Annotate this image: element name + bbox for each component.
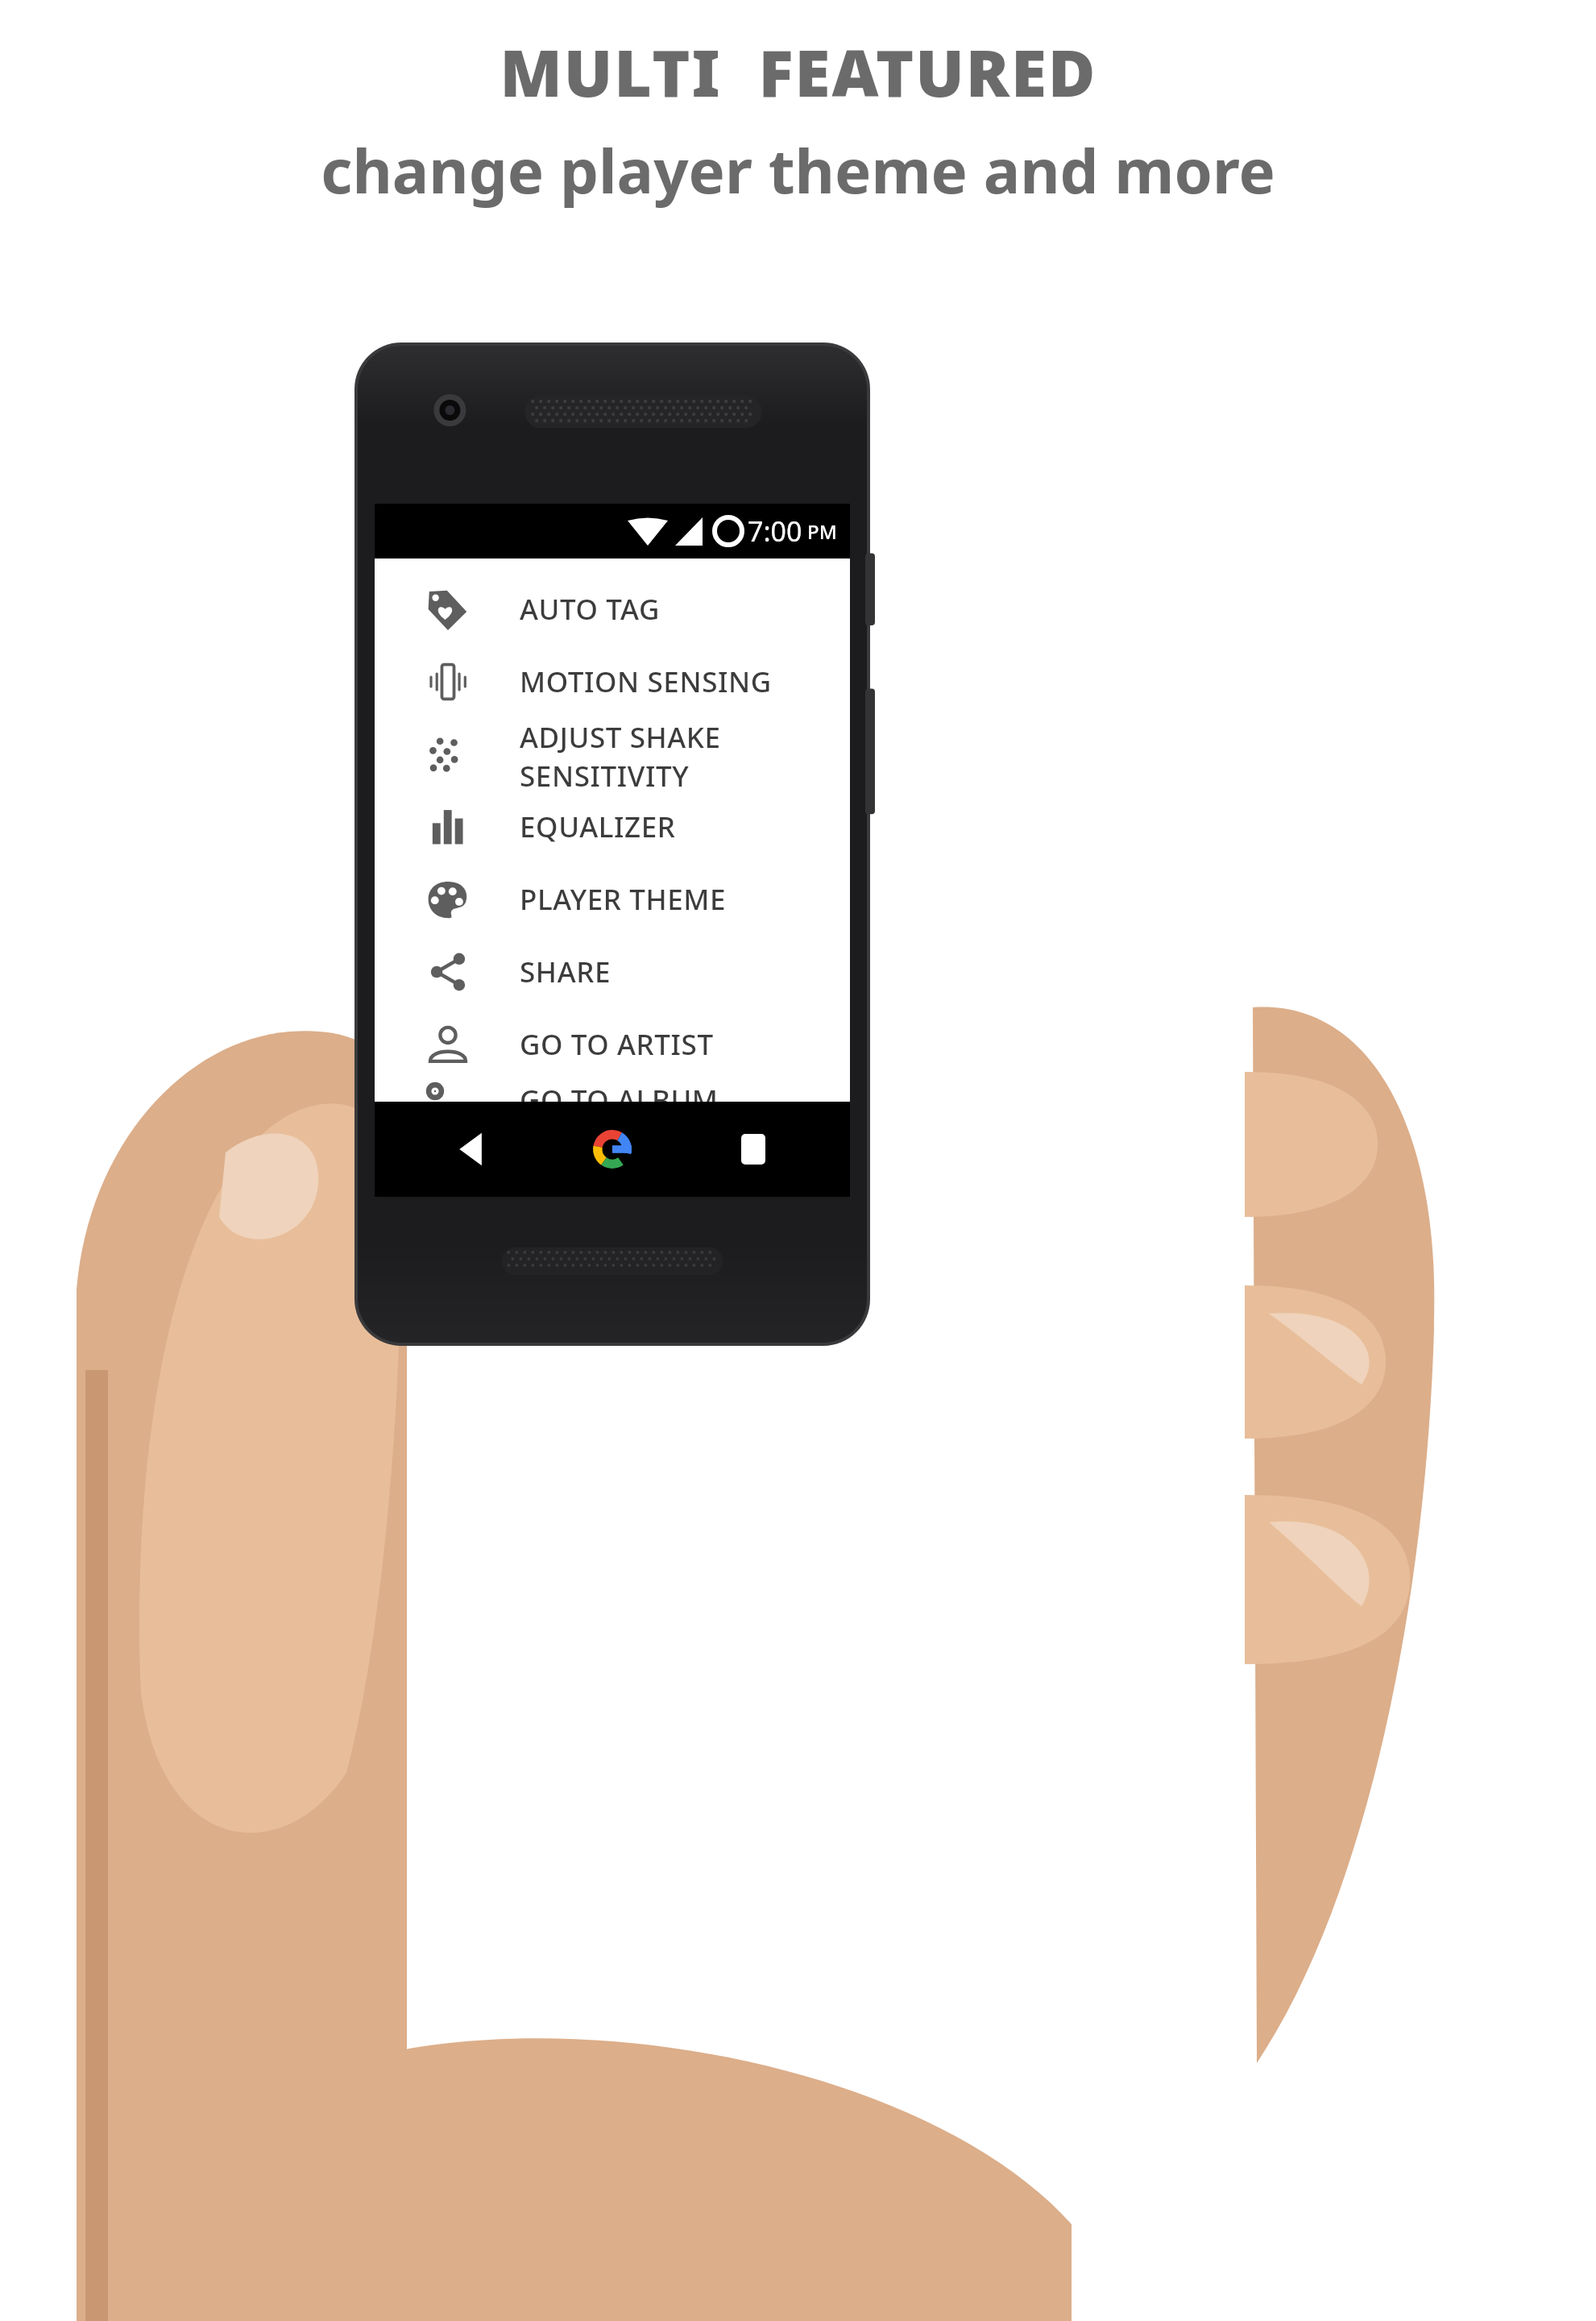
button[interactable]: MOTION SENSING — [375, 646, 850, 718]
button[interactable]: GO TO ARTIST — [375, 1008, 850, 1081]
staticText: 7:00 — [748, 513, 802, 550]
staticText: EQUALIZER — [520, 808, 676, 846]
staticText: MOTION SENSING — [520, 662, 772, 701]
button[interactable]: Back — [427, 1105, 516, 1194]
staticText: SHARE — [520, 953, 611, 991]
staticText: MULTI FEATURED — [500, 27, 1097, 115]
button[interactable]: SHARE — [375, 936, 850, 1008]
button[interactable]: GO TO ALBUM — [375, 1081, 850, 1102]
staticText: GO TO ARTIST — [520, 1025, 714, 1064]
button[interactable]: AUTO TAG — [375, 573, 850, 646]
staticText: GO TO ALBUM — [520, 1081, 719, 1102]
staticText: PM — [807, 518, 837, 545]
button[interactable]: PLAYER THEME — [375, 863, 850, 936]
staticText: change player theme and more — [321, 128, 1275, 212]
button[interactable]: EQUALIZER — [375, 791, 850, 863]
button[interactable]: Home — [568, 1105, 657, 1194]
button[interactable]: ADJUST SHAKE SENSITIVITY — [375, 718, 850, 791]
staticText: PLAYER THEME — [520, 880, 727, 919]
button[interactable]: Recent apps — [709, 1105, 798, 1194]
staticText: ADJUST SHAKE SENSITIVITY — [520, 718, 850, 791]
staticText: AUTO TAG — [520, 590, 660, 629]
